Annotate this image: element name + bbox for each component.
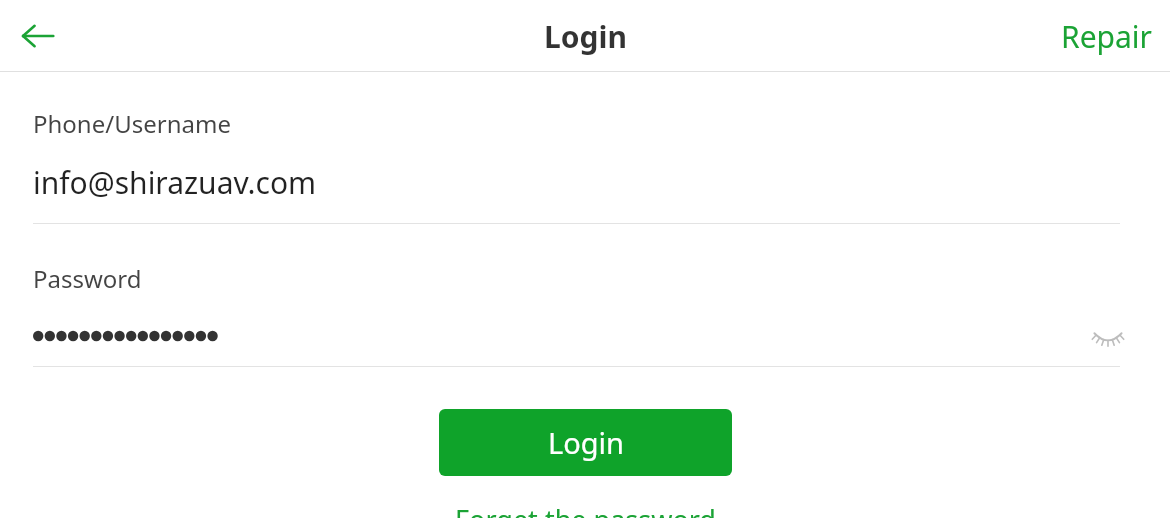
staticText: Password <box>33 262 142 295</box>
staticText: Login <box>544 16 627 57</box>
button[interactable]: Login <box>439 409 732 476</box>
staticText: info@shirazuav.com <box>33 162 317 203</box>
button[interactable]: Back <box>8 6 68 66</box>
staticText: Phone/Username <box>33 107 231 140</box>
staticText: Repair <box>1061 16 1152 57</box>
staticText: Forget the password <box>455 501 716 518</box>
button[interactable]: Repair <box>1043 4 1170 69</box>
staticText: Login <box>548 423 624 462</box>
button[interactable]: Forget the password <box>439 493 732 526</box>
button[interactable]: Show password <box>1080 315 1136 357</box>
